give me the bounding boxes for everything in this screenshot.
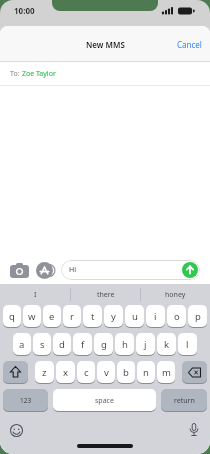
button[interactable]: j	[136, 333, 155, 356]
button[interactable]: i	[146, 305, 165, 328]
button[interactable]	[182, 361, 207, 384]
button[interactable]: x	[56, 361, 75, 384]
button[interactable]: e	[43, 305, 61, 328]
staticText: New MMS	[86, 39, 125, 50]
staticText: e	[49, 310, 55, 323]
button[interactable]: m	[157, 361, 175, 384]
staticText: there	[97, 290, 115, 300]
button[interactable]	[10, 263, 29, 278]
button[interactable]: o	[167, 305, 186, 328]
button[interactable]: k	[157, 333, 176, 356]
button[interactable]: g	[94, 333, 113, 356]
button[interactable]: l	[178, 333, 197, 356]
staticText: Cancel	[177, 39, 202, 50]
button[interactable]: t	[83, 305, 102, 328]
staticText: 123	[20, 396, 32, 405]
staticText: h	[122, 338, 128, 351]
staticText: z	[42, 366, 47, 379]
staticText: return	[174, 396, 195, 406]
staticText: To:	[10, 69, 22, 79]
button[interactable]: Cancel	[177, 39, 202, 50]
staticText: space	[95, 396, 114, 406]
staticText: Hi	[69, 265, 76, 275]
button[interactable]: s	[33, 333, 51, 356]
button[interactable]: b	[117, 361, 135, 384]
button[interactable]: there	[71, 284, 140, 305]
staticText: p	[195, 310, 201, 323]
staticText: l	[186, 338, 189, 351]
button[interactable]: honey	[141, 284, 210, 305]
staticText: d	[59, 338, 65, 351]
staticText: b	[123, 366, 129, 379]
staticText: n	[143, 366, 149, 379]
staticText: u	[132, 310, 138, 323]
button[interactable]: p	[188, 305, 207, 328]
staticText: I	[34, 290, 37, 300]
button[interactable]: u	[125, 305, 144, 328]
staticText: g	[101, 338, 107, 351]
button[interactable]: r	[63, 305, 81, 328]
staticText: w	[28, 310, 36, 323]
staticText: r	[70, 310, 74, 323]
staticText: m	[162, 366, 171, 379]
staticText: x	[63, 366, 69, 379]
button[interactable]	[189, 423, 199, 437]
button[interactable]	[182, 262, 198, 278]
button[interactable]: n	[137, 361, 155, 384]
staticText: j	[144, 338, 147, 351]
button[interactable]: 123	[3, 389, 48, 412]
button[interactable]: y	[104, 305, 123, 328]
button[interactable]: Hi	[61, 260, 200, 280]
button[interactable]	[3, 361, 28, 384]
button[interactable]: space	[53, 389, 156, 412]
button[interactable]: q	[3, 305, 21, 328]
button[interactable]: a	[13, 333, 31, 356]
button[interactable]: c	[77, 361, 95, 384]
staticText: a	[19, 338, 25, 351]
button[interactable]: v	[97, 361, 115, 384]
staticText: t	[91, 310, 95, 323]
staticText: 10:00	[14, 5, 35, 16]
staticText: k	[164, 338, 170, 351]
button[interactable]: z	[35, 361, 54, 384]
staticText: q	[9, 310, 15, 323]
staticText: Zoe Taylor	[22, 69, 56, 79]
staticText: v	[104, 366, 109, 379]
staticText: f	[81, 338, 85, 351]
staticText: s	[40, 338, 45, 351]
staticText: y	[111, 310, 116, 323]
button[interactable]: d	[53, 333, 71, 356]
button[interactable]: To:	[10, 62, 210, 86]
staticText: c	[84, 366, 89, 379]
button[interactable]	[10, 424, 23, 437]
button[interactable]: f	[73, 333, 92, 356]
button[interactable]: I	[0, 284, 70, 305]
button[interactable]: h	[115, 333, 134, 356]
staticText: honey	[165, 290, 186, 300]
button[interactable]: return	[161, 389, 207, 412]
button[interactable]: w	[23, 305, 41, 328]
staticText: o	[174, 310, 180, 323]
button[interactable]	[36, 262, 57, 279]
staticText: i	[154, 310, 157, 323]
